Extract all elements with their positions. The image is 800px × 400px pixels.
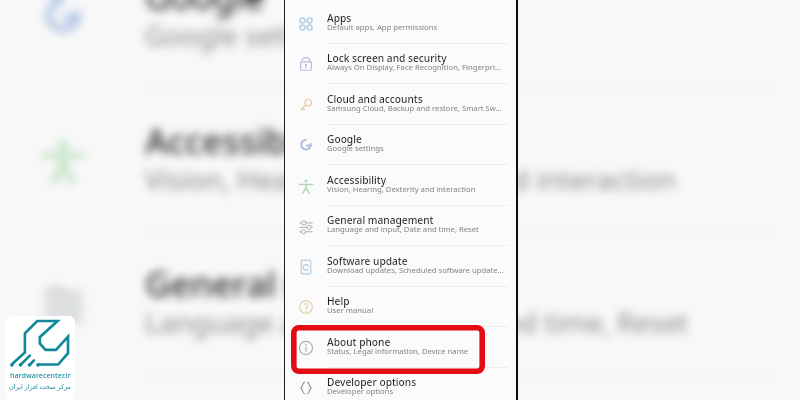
staticText: hardwarecenter.ir	[10, 370, 71, 380]
staticText: Samsung Cloud, Backup and restore, Smart…	[327, 103, 502, 113]
button[interactable]: Lock screen and security	[285, 43, 516, 84]
staticText: Developer options	[327, 386, 394, 396]
staticText: Status, Legal information, Device name	[327, 346, 469, 356]
button[interactable]: Software update	[285, 246, 516, 287]
staticText: Google settings	[327, 143, 384, 153]
staticText: Always On Display, Face Recognition, Fin…	[327, 62, 501, 72]
button[interactable]: Google	[285, 124, 516, 165]
staticText: Cloud and accounts	[327, 92, 423, 106]
button[interactable]: Help	[285, 286, 516, 327]
staticText: Google	[145, 0, 265, 21]
staticText: Google	[327, 132, 362, 146]
staticText: Help	[327, 294, 350, 308]
button[interactable]: Accessibility	[285, 165, 516, 206]
button[interactable]: About phone	[285, 327, 516, 368]
staticText: Accessibility	[327, 173, 387, 187]
staticText: Lock screen and security	[327, 51, 447, 65]
staticText: Developer options	[327, 375, 417, 389]
button[interactable]: Cloud and accounts	[285, 84, 516, 125]
staticText: Vision, Hearing, Dexterity and interacti…	[145, 161, 676, 198]
staticText: Software update	[327, 254, 408, 268]
staticText: Apps	[327, 11, 352, 25]
staticText: Language and input, Date and time, Reset	[327, 224, 479, 234]
staticText: General management	[145, 260, 511, 308]
staticText: Accessibility	[145, 117, 348, 165]
button[interactable]: General management	[285, 205, 516, 246]
staticText: User manual	[327, 305, 374, 315]
staticText: مرکز سخت افزار ایران	[9, 382, 72, 391]
button[interactable]: Developer options	[285, 367, 516, 400]
staticText: General management	[327, 213, 434, 227]
staticText: Download updates, Scheduled software upd…	[327, 265, 504, 275]
staticText: Vision, Hearing, Dexterity and interacti…	[327, 184, 476, 194]
staticText: Google settings	[145, 17, 348, 54]
button[interactable]: Apps	[285, 3, 516, 44]
staticText: Default apps, App permissions	[327, 22, 438, 32]
staticText: Language and input, Date and time, Reset	[145, 304, 689, 341]
staticText: About phone	[327, 335, 391, 349]
